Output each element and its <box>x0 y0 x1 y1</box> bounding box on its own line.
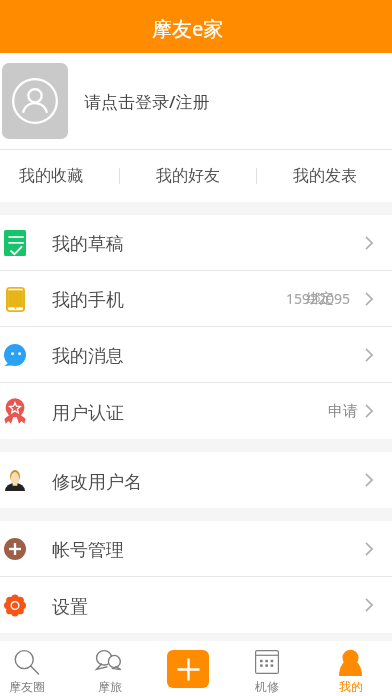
button[interactable]: 我的手机 <box>0 271 392 326</box>
staticText: 摩友圈 <box>9 679 45 694</box>
staticText: 我的草稿 <box>52 233 124 256</box>
button[interactable]: 发布 <box>166 641 210 696</box>
button[interactable]: 我的草稿 <box>0 215 392 270</box>
staticText: 用户认证 <box>52 402 124 425</box>
staticText: 摩友e家 <box>152 15 224 42</box>
staticText: 设置 <box>52 596 88 619</box>
button[interactable]: 我的发表 <box>257 150 392 202</box>
button[interactable]: 帐号管理 <box>0 521 392 576</box>
staticText: 修改用户名 <box>52 471 142 494</box>
staticText: 申请 <box>328 402 358 421</box>
staticText: 我的好友 <box>156 166 220 186</box>
button[interactable]: 摩旅 <box>53 641 166 696</box>
staticText: 我的消息 <box>52 345 124 368</box>
staticText: 我的 <box>339 679 363 694</box>
staticText: 我的收藏 <box>19 166 83 186</box>
button[interactable]: 用户认证 <box>0 383 392 439</box>
staticText: 159220950 <box>286 289 358 309</box>
staticText: 我的发表 <box>293 166 357 186</box>
button[interactable]: 我的收藏 <box>0 150 119 202</box>
button[interactable]: 机修 <box>210 641 323 696</box>
staticText: 摩旅 <box>98 679 122 694</box>
button[interactable]: 我的好友 <box>120 150 256 202</box>
staticText: 请点击登录/注册 <box>84 90 210 113</box>
button[interactable]: 请点击登录/注册 <box>0 53 392 149</box>
button[interactable]: 摩友圈 <box>0 641 53 696</box>
staticText: 绑定 <box>306 290 334 308</box>
staticText: 帐号管理 <box>52 539 124 562</box>
button[interactable]: 设置 <box>0 577 392 633</box>
button[interactable]: 我的消息 <box>0 327 392 382</box>
staticText: 我的手机 <box>52 289 124 312</box>
button[interactable]: 修改用户名 <box>0 452 392 508</box>
staticText: 机修 <box>255 679 279 694</box>
button[interactable]: 我的 <box>323 641 392 696</box>
